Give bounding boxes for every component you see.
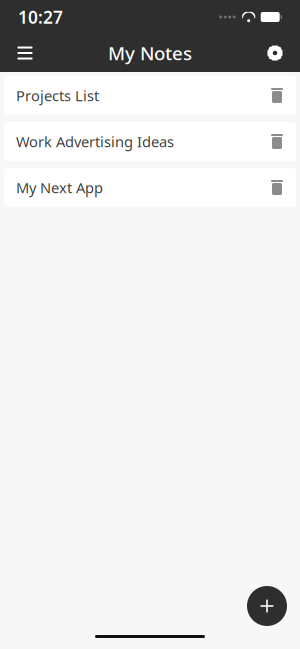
staticText: Work Advertising Ideas [16, 132, 174, 151]
button[interactable]: Work Advertising Ideas [4, 122, 296, 161]
staticText: My Notes [108, 41, 192, 65]
staticText: Projects List [16, 86, 99, 105]
button[interactable]: Projects List [4, 76, 296, 115]
button[interactable]: Settings [256, 34, 294, 72]
staticText: My Next App [16, 178, 103, 197]
button[interactable]: My Next App [4, 168, 296, 207]
button[interactable]: Menu [6, 34, 44, 72]
button[interactable]: Add note [245, 584, 289, 628]
staticText: 10:27 [18, 5, 63, 28]
